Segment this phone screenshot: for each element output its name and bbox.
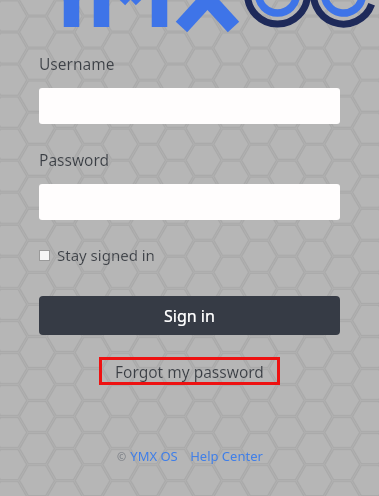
staticText: Password — [39, 149, 110, 170]
staticText: Username — [39, 53, 115, 74]
staticText: YMX OS — [130, 447, 178, 465]
staticText: Help Center — [190, 447, 263, 465]
button[interactable]: Sign in — [39, 296, 340, 335]
staticText: Forgot my password — [115, 361, 264, 382]
button[interactable]: Stay signed in — [39, 245, 155, 265]
staticText: Sign in — [164, 305, 215, 327]
staticText: Stay signed in — [57, 245, 155, 265]
button[interactable]: Help Center — [190, 447, 263, 465]
button[interactable]: YMX OS — [130, 447, 178, 465]
staticText: © — [117, 449, 127, 464]
button[interactable]: Forgot my password — [99, 357, 280, 385]
